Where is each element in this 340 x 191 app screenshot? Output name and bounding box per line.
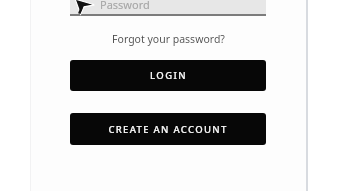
button[interactable]: Forgot your password? [70, 30, 266, 48]
button[interactable]: LOGIN [70, 60, 266, 91]
button[interactable]: Password [70, 0, 266, 16]
staticText: Forgot your password? [112, 32, 225, 46]
button[interactable]: CREATE AN ACCOUNT [70, 113, 266, 145]
staticText: Password [100, 0, 150, 12]
staticText: LOGIN [150, 69, 187, 82]
staticText: CREATE AN ACCOUNT [108, 123, 228, 136]
